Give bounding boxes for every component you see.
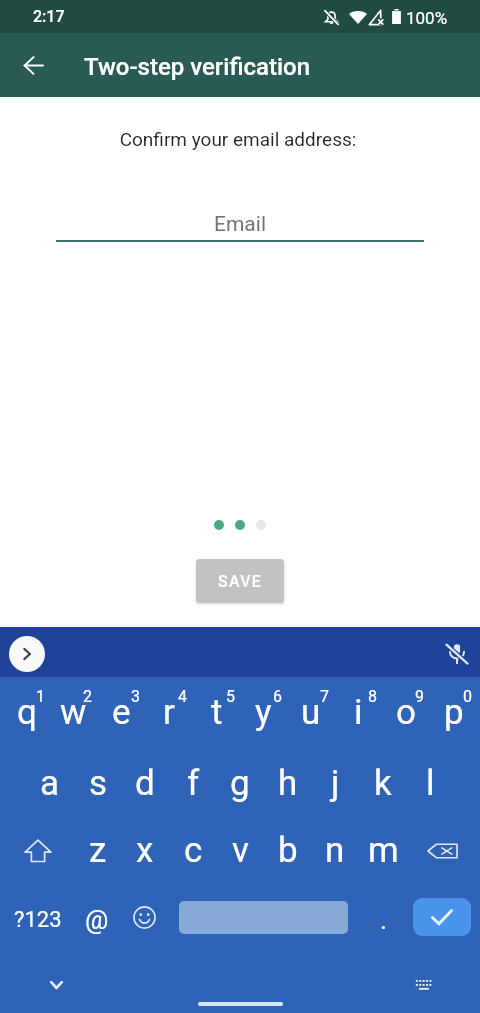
staticText: q bbox=[17, 692, 37, 733]
staticText: r bbox=[163, 692, 175, 733]
staticText: 2 bbox=[83, 687, 92, 706]
button[interactable]: o bbox=[382, 681, 429, 749]
button[interactable]: z bbox=[74, 816, 122, 884]
staticText: t bbox=[211, 692, 223, 733]
staticText: @ bbox=[85, 905, 109, 935]
staticText: 0 bbox=[463, 687, 472, 706]
button[interactable]: g bbox=[216, 749, 264, 817]
staticText: l bbox=[426, 763, 435, 804]
staticText: o bbox=[396, 692, 416, 733]
button[interactable]: Space bbox=[179, 901, 348, 934]
button[interactable]: d bbox=[121, 749, 169, 817]
button[interactable]: f bbox=[169, 749, 217, 817]
staticText: 7 bbox=[320, 687, 329, 706]
staticText: s bbox=[89, 763, 108, 804]
button[interactable]: n bbox=[311, 816, 359, 884]
staticText: m bbox=[368, 830, 399, 871]
button[interactable]: v bbox=[216, 816, 264, 884]
button[interactable]: y bbox=[240, 681, 287, 749]
staticText: j bbox=[331, 763, 340, 804]
staticText: Two-step verification bbox=[84, 53, 311, 81]
staticText: h bbox=[278, 763, 298, 804]
button[interactable]: Switch keyboard bbox=[404, 965, 444, 1005]
staticText: 9 bbox=[415, 687, 424, 706]
staticText: 6 bbox=[273, 687, 282, 706]
staticText: e bbox=[112, 692, 131, 733]
button[interactable]: Backspace bbox=[408, 816, 480, 884]
staticText: c bbox=[184, 830, 203, 871]
button[interactable]: l bbox=[406, 749, 454, 817]
staticText: v bbox=[232, 830, 249, 871]
button[interactable]: Shift bbox=[0, 816, 72, 884]
staticText: 2:17 bbox=[33, 7, 65, 26]
staticText: 4 bbox=[178, 687, 187, 706]
staticText: Email bbox=[0, 212, 480, 237]
button[interactable]: . bbox=[356, 886, 408, 954]
button[interactable]: q bbox=[3, 681, 50, 749]
staticText: z bbox=[89, 830, 107, 871]
staticText: f bbox=[187, 763, 200, 804]
button[interactable]: j bbox=[311, 749, 359, 817]
button[interactable]: p bbox=[430, 681, 477, 749]
staticText: n bbox=[325, 830, 345, 871]
button[interactable]: b bbox=[264, 816, 312, 884]
button[interactable]: e bbox=[98, 681, 145, 749]
button[interactable]: Voice input off bbox=[438, 635, 474, 671]
staticText: 1 bbox=[36, 687, 45, 706]
button[interactable]: SAVE bbox=[196, 559, 284, 603]
staticText: ?123 bbox=[14, 907, 62, 933]
staticText: 3 bbox=[131, 687, 140, 706]
button[interactable]: i bbox=[335, 681, 382, 749]
staticText: y bbox=[255, 692, 272, 733]
button[interactable]: Emoji bbox=[122, 886, 167, 954]
staticText: Confirm your email address: bbox=[0, 128, 478, 150]
staticText: SAVE bbox=[218, 572, 263, 591]
button[interactable]: x bbox=[121, 816, 169, 884]
button[interactable]: k bbox=[359, 749, 407, 817]
button[interactable]: a bbox=[26, 749, 74, 817]
staticText: x bbox=[136, 830, 154, 871]
button[interactable]: h bbox=[264, 749, 312, 817]
staticText: i bbox=[354, 692, 363, 733]
button[interactable]: s bbox=[74, 749, 122, 817]
staticText: g bbox=[230, 763, 250, 804]
staticText: u bbox=[301, 692, 321, 733]
staticText: 100% bbox=[406, 8, 448, 28]
button[interactable]: t bbox=[193, 681, 240, 749]
staticText: p bbox=[444, 692, 464, 733]
button[interactable]: Enter bbox=[413, 898, 471, 936]
button[interactable]: Hide keyboard bbox=[36, 965, 76, 1005]
staticText: 8 bbox=[368, 687, 377, 706]
button[interactable]: Back bbox=[9, 41, 57, 89]
button[interactable]: m bbox=[359, 816, 407, 884]
staticText: d bbox=[135, 763, 155, 804]
staticText: b bbox=[278, 830, 298, 871]
button[interactable]: r bbox=[145, 681, 192, 749]
staticText: . bbox=[380, 905, 387, 935]
button[interactable]: u bbox=[287, 681, 334, 749]
staticText: 5 bbox=[226, 687, 235, 706]
button[interactable]: ?123 bbox=[0, 886, 76, 954]
button[interactable]: w bbox=[50, 681, 97, 749]
button[interactable]: c bbox=[169, 816, 217, 884]
button[interactable]: More suggestions bbox=[9, 636, 45, 672]
button[interactable]: @ bbox=[76, 886, 118, 954]
staticText: a bbox=[40, 763, 60, 804]
staticText: k bbox=[374, 763, 392, 804]
staticText: w bbox=[60, 692, 87, 733]
